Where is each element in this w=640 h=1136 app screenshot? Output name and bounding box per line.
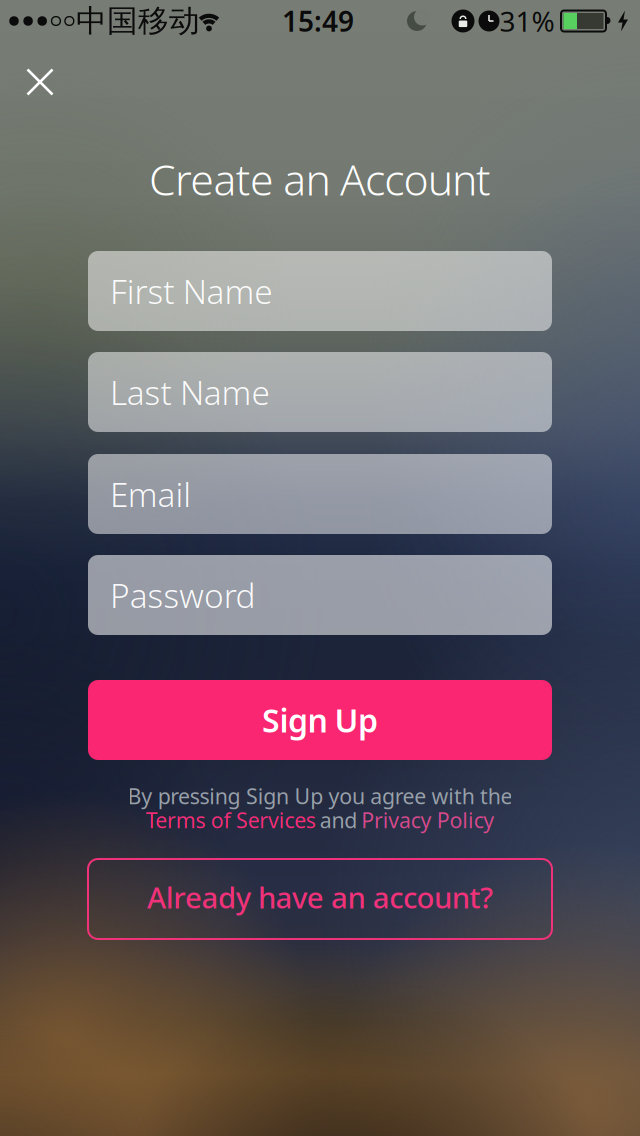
button[interactable]: Password — [88, 555, 552, 635]
staticText: First Name — [110, 269, 272, 313]
staticText: Password — [110, 573, 256, 617]
staticText: Last Name — [110, 370, 269, 414]
staticText: By pressing Sign Up you agree with the — [127, 782, 512, 810]
staticText: Privacy Policy — [361, 806, 494, 834]
staticText: Terms of Services — [146, 806, 316, 834]
staticText: and — [320, 806, 357, 834]
button[interactable]: Already have an account? — [88, 859, 552, 939]
staticText: 中国移动 — [76, 2, 200, 40]
staticText: Create an Account — [149, 151, 491, 207]
button[interactable]: Email — [88, 454, 552, 534]
staticText: Already have an account? — [147, 877, 493, 916]
staticText: 15:49 — [282, 2, 354, 40]
staticText: Sign Up — [262, 699, 378, 741]
button[interactable]: Terms of Services — [146, 806, 316, 834]
button[interactable]: Close — [15, 57, 64, 106]
button[interactable]: First Name — [88, 251, 552, 331]
button[interactable]: Sign Up — [88, 680, 552, 760]
button[interactable]: Privacy Policy — [361, 806, 494, 834]
staticText: 31% — [499, 2, 554, 40]
staticText: Email — [110, 472, 191, 516]
button[interactable]: Last Name — [88, 352, 552, 432]
